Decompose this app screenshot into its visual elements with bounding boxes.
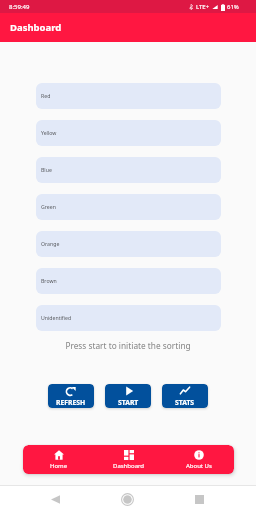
staticText: Press start to initiate the sorting xyxy=(0,340,256,351)
button[interactable]: Orange xyxy=(36,231,221,257)
staticText: Red xyxy=(41,92,51,99)
button[interactable]: START xyxy=(105,384,151,408)
button[interactable]: Green xyxy=(36,194,221,220)
button[interactable]: Back xyxy=(45,489,65,509)
button[interactable]: About Us xyxy=(164,445,234,474)
button[interactable]: STATS xyxy=(162,384,208,408)
staticText: REFRESH xyxy=(56,398,86,407)
button[interactable]: Blue xyxy=(36,157,221,183)
button[interactable]: Yellow xyxy=(36,120,221,146)
staticText: LTE+ xyxy=(196,3,210,11)
staticText: Orange xyxy=(41,240,60,247)
staticText: Green xyxy=(41,203,56,210)
button[interactable]: Unidentified xyxy=(36,305,221,331)
button[interactable]: Red xyxy=(36,83,221,109)
staticText: Unidentified xyxy=(41,314,72,321)
staticText: Brown xyxy=(41,277,57,284)
staticText: Dashboard xyxy=(10,21,62,34)
staticText: 61% xyxy=(227,3,239,11)
button[interactable]: Home xyxy=(117,489,137,509)
staticText: About Us xyxy=(186,462,212,470)
staticText: Dashboard xyxy=(113,462,145,470)
button[interactable]: Recents xyxy=(189,489,209,509)
staticText: Yellow xyxy=(41,129,57,136)
staticText: Blue xyxy=(41,166,52,173)
staticText: START xyxy=(118,398,139,407)
staticText: Home xyxy=(50,462,68,470)
staticText: STATS xyxy=(175,398,195,407)
button[interactable]: Brown xyxy=(36,268,221,294)
button[interactable]: Home xyxy=(23,445,94,474)
staticText: 8:59:49 xyxy=(9,3,30,11)
button[interactable]: REFRESH xyxy=(48,384,94,408)
button[interactable]: Dashboard xyxy=(94,445,164,474)
